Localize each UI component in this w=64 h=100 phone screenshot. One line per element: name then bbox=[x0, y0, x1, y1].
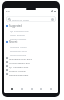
button[interactable]: Sprint Backlog bbox=[4, 52, 58, 56]
button[interactable]: Recent bbox=[4, 40, 58, 44]
staticText: Sprint Backlog bbox=[10, 53, 27, 56]
staticText: Team Budget bbox=[10, 33, 25, 36]
staticText: Marketing Plan.docx bbox=[9, 57, 33, 60]
button[interactable]: Photos Archive bbox=[4, 68, 58, 72]
button[interactable]: Annual Report.pdf bbox=[4, 60, 58, 64]
button[interactable]: Tab 5 bbox=[48, 86, 53, 91]
staticText: Design Review bbox=[10, 37, 27, 40]
button[interactable]: Tab 1 bbox=[9, 86, 14, 91]
staticText: Photos Archive bbox=[9, 69, 26, 72]
staticText: Q1 Numbers.xlsx bbox=[9, 65, 29, 68]
staticText: Search in Drive bbox=[12, 18, 29, 21]
button[interactable]: Team Budget bbox=[4, 32, 58, 36]
button[interactable]: Onboarding.pptx bbox=[4, 72, 58, 76]
button[interactable]: Design Review bbox=[4, 36, 58, 40]
staticText: Onboarding.pptx bbox=[9, 73, 29, 76]
button[interactable]: Tab 4 bbox=[38, 86, 43, 91]
staticText: Meeting Notes bbox=[10, 45, 27, 48]
button[interactable]: Marketing Plan.docx bbox=[4, 56, 58, 60]
staticText: Annual Report.pdf bbox=[9, 61, 30, 64]
staticText: Recent bbox=[9, 40, 18, 44]
button[interactable]: Tab 2 bbox=[19, 86, 24, 91]
staticText: 9:41 bbox=[6, 10, 11, 13]
button[interactable]: Meeting Notes bbox=[4, 44, 58, 48]
button[interactable]: Q1 Numbers.xlsx bbox=[4, 64, 58, 68]
button[interactable]: Q3 Planning Doc bbox=[4, 28, 58, 32]
staticText: Suggested bbox=[9, 24, 22, 28]
button[interactable]: Search in Drive bbox=[6, 16, 56, 22]
button[interactable]: Tab 3 bbox=[29, 86, 34, 91]
button[interactable]: Suggested bbox=[4, 24, 58, 28]
staticText: Roadmap 2024 bbox=[10, 49, 27, 52]
staticText: Q3 Planning Doc bbox=[10, 29, 29, 32]
button[interactable]: Roadmap 2024 bbox=[4, 48, 58, 52]
